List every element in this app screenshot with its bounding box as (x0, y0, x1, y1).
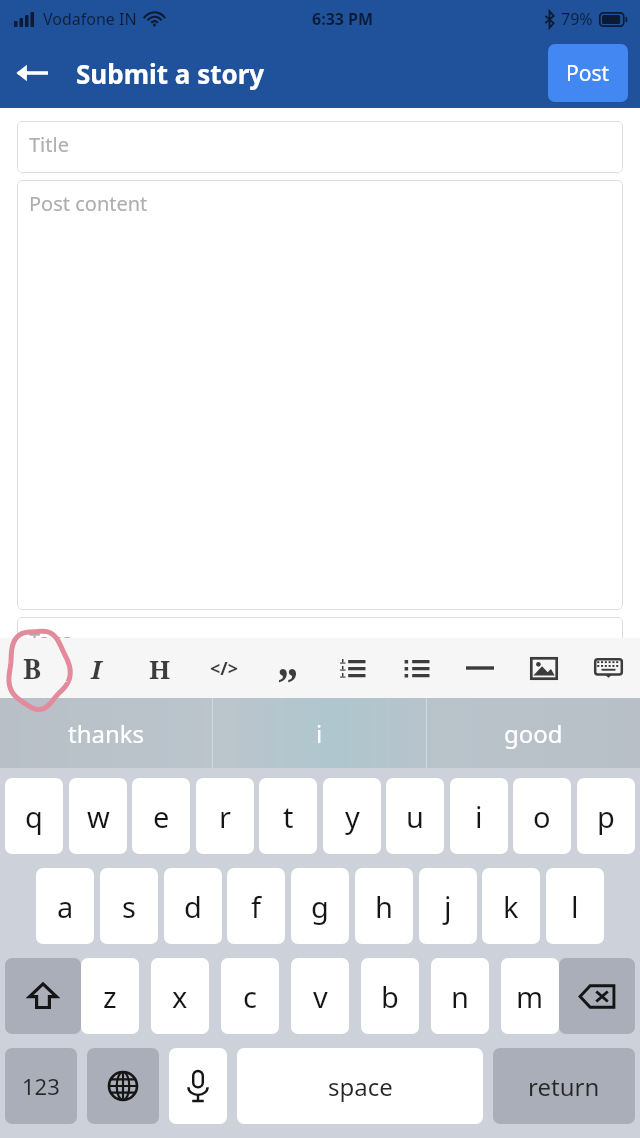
staticText: thanks (68, 717, 145, 750)
staticText: e (153, 797, 170, 836)
button[interactable]: Tags (17, 617, 623, 669)
staticText: l (571, 887, 579, 926)
staticText: ” (277, 653, 299, 683)
button[interactable]: Post (548, 44, 628, 102)
button[interactable]: Dictation (169, 1048, 227, 1124)
button[interactable]: e (132, 778, 190, 854)
staticText: v (313, 977, 328, 1016)
button[interactable]: k (482, 868, 540, 944)
button[interactable]: t (259, 778, 317, 854)
staticText: w (87, 797, 110, 836)
staticText: g (311, 887, 329, 926)
staticText: i (475, 797, 483, 836)
button[interactable]: p (577, 778, 635, 854)
button[interactable]: Numbered list (324, 638, 380, 698)
staticText: y (345, 797, 360, 836)
staticText: Post content (29, 190, 148, 217)
staticText: m (516, 977, 544, 1016)
staticText: f (251, 887, 261, 926)
button[interactable]: Title (17, 121, 623, 173)
button[interactable]: c (221, 958, 279, 1034)
button[interactable]: Hide keyboard (580, 638, 636, 698)
staticText: space (328, 1070, 393, 1103)
button[interactable]: m (501, 958, 559, 1034)
staticText: p (597, 797, 615, 836)
button[interactable]: Horizontal rule (452, 638, 508, 698)
staticText: d (184, 887, 202, 926)
button[interactable]: h (355, 868, 413, 944)
staticText: return (528, 1070, 600, 1103)
button[interactable]: good (427, 698, 640, 768)
button[interactable]: Back (0, 41, 64, 105)
staticText: B (23, 650, 42, 687)
button[interactable]: z (81, 958, 139, 1034)
button[interactable]: Bold (4, 638, 60, 698)
button[interactable]: w (69, 778, 127, 854)
button[interactable]: Bulleted list (388, 638, 444, 698)
staticText: q (25, 797, 43, 836)
button[interactable]: Insert image (516, 638, 572, 698)
button[interactable]: Numbers (5, 1048, 77, 1124)
button[interactable]: Code (196, 638, 252, 698)
button[interactable]: i (213, 698, 426, 768)
button[interactable]: thanks (0, 698, 212, 768)
button[interactable]: Backspace (559, 958, 635, 1034)
staticText: 6:33 PM (312, 8, 374, 30)
staticText: j (444, 887, 452, 926)
button[interactable]: Italic (68, 638, 124, 698)
staticText: t (283, 797, 294, 836)
staticText: x (172, 977, 188, 1016)
staticText: Submit a story (76, 56, 265, 91)
button[interactable]: u (386, 778, 444, 854)
staticText: s (122, 887, 136, 926)
button[interactable]: f (227, 868, 285, 944)
staticText: i (316, 717, 323, 750)
button[interactable]: Post content (17, 180, 623, 610)
staticText: 79% (561, 8, 593, 30)
button[interactable]: a (36, 868, 94, 944)
staticText: Title (29, 131, 69, 158)
staticText: good (504, 717, 563, 750)
staticText: </> (210, 656, 239, 681)
staticText: H (149, 651, 171, 686)
staticText: a (57, 887, 74, 926)
button[interactable]: l (546, 868, 604, 944)
staticText: k (503, 887, 519, 926)
button[interactable]: j (419, 868, 477, 944)
button[interactable]: y (323, 778, 381, 854)
staticText: Post (566, 59, 610, 88)
staticText: r (219, 797, 231, 836)
staticText: b (381, 977, 399, 1016)
staticText: u (406, 797, 424, 836)
staticText: I (91, 651, 102, 686)
button[interactable]: q (5, 778, 63, 854)
staticText: c (243, 977, 257, 1016)
button[interactable]: b (361, 958, 419, 1034)
button[interactable]: r (196, 778, 254, 854)
button[interactable]: g (291, 868, 349, 944)
staticText: Tags (29, 627, 72, 654)
button[interactable]: Change keyboard (87, 1048, 159, 1124)
button[interactable]: n (431, 958, 489, 1034)
button[interactable]: return (493, 1048, 635, 1124)
button[interactable]: i (450, 778, 508, 854)
button[interactable]: x (151, 958, 209, 1034)
staticText: Vodafone IN (43, 8, 137, 30)
button[interactable]: Shift (5, 958, 81, 1034)
button[interactable]: d (164, 868, 222, 944)
button[interactable]: Heading (132, 638, 188, 698)
button[interactable]: v (291, 958, 349, 1034)
staticText: o (533, 797, 551, 836)
staticText: 123 (22, 1071, 60, 1101)
staticText: h (375, 887, 393, 926)
button[interactable]: Quote (260, 638, 316, 698)
staticText: z (103, 977, 117, 1016)
button[interactable]: s (100, 868, 158, 944)
button[interactable]: space (237, 1048, 483, 1124)
staticText: n (451, 977, 469, 1016)
button[interactable]: o (513, 778, 571, 854)
